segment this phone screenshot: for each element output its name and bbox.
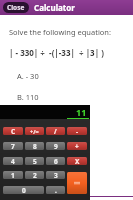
staticText: 0: [22, 186, 26, 194]
staticText: A. - 30: [17, 71, 39, 81]
button[interactable]: Close: [3, 2, 29, 13]
staticText: X: [75, 157, 80, 165]
staticText: 9: [54, 142, 58, 150]
staticText: 2: [33, 171, 37, 179]
staticText: 5: [33, 157, 37, 165]
button[interactable]: =: [67, 172, 87, 194]
staticText: Close: [7, 3, 25, 12]
button[interactable]: 8: [25, 142, 44, 150]
button[interactable]: 4: [3, 157, 23, 165]
button[interactable]: 2: [25, 171, 44, 179]
button[interactable]: 7: [3, 142, 23, 150]
button[interactable]: 9: [46, 142, 65, 150]
staticText: 11: [76, 106, 87, 118]
staticText: +/=: [30, 128, 39, 135]
button[interactable]: /: [46, 127, 65, 135]
button[interactable]: -: [67, 127, 87, 135]
button[interactable]: 6: [46, 157, 65, 165]
button[interactable]: A. - 30: [17, 71, 39, 81]
button[interactable]: 1: [3, 171, 23, 179]
button[interactable]: 5: [25, 157, 44, 165]
button[interactable]: B. 110: [17, 92, 39, 102]
button[interactable]: 0: [3, 186, 44, 194]
staticText: +: [75, 142, 79, 150]
staticText: B. 110: [17, 92, 39, 102]
staticText: 6: [54, 157, 58, 165]
staticText: 4: [11, 157, 15, 165]
button[interactable]: .: [46, 186, 65, 194]
button[interactable]: +/=: [25, 127, 44, 135]
staticText: /: [54, 127, 57, 135]
button[interactable]: +: [67, 142, 87, 150]
staticText: -: [76, 127, 79, 135]
staticText: 8: [33, 142, 37, 150]
staticText: Calculator: [34, 2, 75, 13]
staticText: | - 330| ÷ -(|-33| ÷ |3| ): [9, 47, 104, 58]
staticText: 3: [54, 171, 58, 179]
staticText: C: [11, 127, 16, 135]
button[interactable]: C: [3, 127, 23, 135]
staticText: 7: [11, 142, 15, 150]
staticText: .: [55, 186, 57, 194]
button[interactable]: X: [67, 157, 87, 165]
button[interactable]: 3: [46, 171, 65, 179]
staticText: 1: [11, 171, 15, 179]
staticText: Solve the following equation:: [9, 27, 112, 37]
